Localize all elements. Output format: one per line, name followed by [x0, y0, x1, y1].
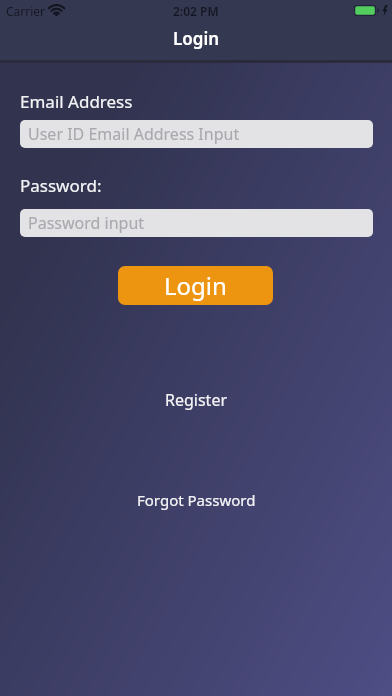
staticText: User ID Email Address Input — [28, 123, 240, 145]
staticText: Register — [165, 389, 228, 411]
staticText: Password input — [28, 212, 145, 234]
staticText: Login — [164, 269, 227, 302]
staticText: Password: — [20, 174, 102, 197]
staticText: 2:02 PM — [173, 3, 219, 19]
staticText: Forgot Password — [137, 490, 256, 510]
button[interactable]: Password input — [20, 209, 373, 237]
staticText: Login — [173, 27, 220, 50]
button[interactable]: User ID Email Address Input — [20, 120, 373, 148]
staticText: Email Address — [20, 90, 133, 113]
button[interactable]: Forgot Password — [137, 490, 256, 510]
button[interactable]: Login — [118, 266, 273, 305]
button[interactable]: Register — [165, 389, 228, 411]
staticText: Carrier — [6, 3, 46, 19]
